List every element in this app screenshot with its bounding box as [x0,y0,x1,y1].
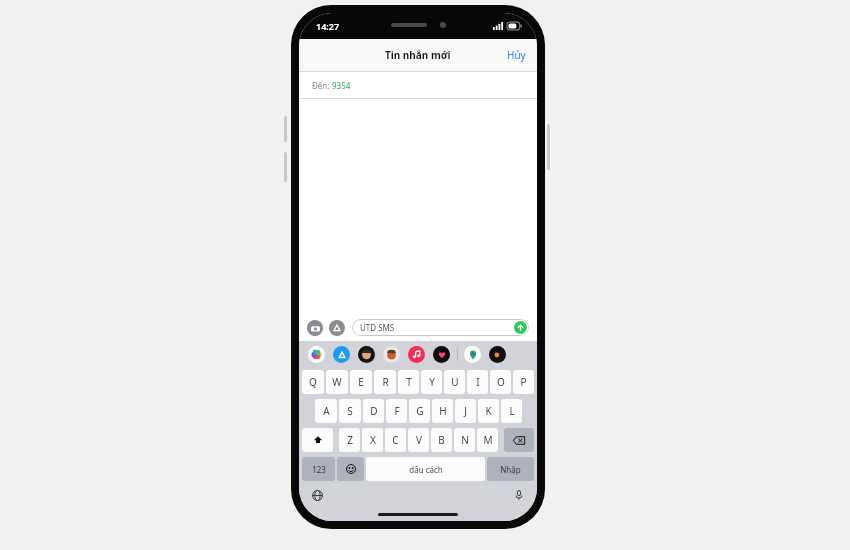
button[interactable]: Hủy [496,41,537,69]
staticText: F [394,404,400,418]
button[interactable]: App [408,346,425,363]
button[interactable]: Q [302,370,324,394]
button[interactable]: App [433,346,450,363]
button[interactable]: A [315,399,337,423]
staticText: 123 [312,464,326,475]
staticText: T [406,375,412,389]
staticText: O [497,375,505,389]
button[interactable]: E [350,370,372,394]
button[interactable]: R [374,370,396,394]
button[interactable]: W [326,370,348,394]
staticText: X [370,433,376,447]
staticText: N [461,433,469,447]
staticText: S [347,404,353,418]
button[interactable]: J [455,399,476,423]
button[interactable]: Đến: [299,72,537,98]
staticText: W [332,375,342,389]
button[interactable]: G [409,399,430,423]
button[interactable]: F [386,399,407,423]
staticText: G [416,404,424,418]
button[interactable]: I [467,370,488,394]
button[interactable]: Backspace [504,428,534,452]
button[interactable]: App [464,346,481,363]
button[interactable]: App [489,346,506,363]
staticText: V [416,433,422,447]
staticText: Q [309,375,317,389]
staticText: R [382,375,389,389]
staticText: Tin nhắn mới [385,48,451,62]
staticText: Hủy [507,48,526,62]
staticText: D [370,404,378,418]
button[interactable]: App [308,346,325,363]
staticText: UTD SMS [360,322,395,333]
staticText: M [483,433,493,447]
button[interactable]: P [513,370,534,394]
staticText: J [464,404,467,418]
button[interactable]: Shift [302,428,333,452]
staticText: 9354 [332,80,351,91]
button[interactable]: App Store [329,320,345,336]
button[interactable]: U [444,370,465,394]
staticText: P [520,375,527,389]
button[interactable]: Y [421,370,442,394]
button[interactable]: 123 [302,457,335,481]
button[interactable]: X [362,428,383,452]
staticText: Z [347,433,353,447]
staticText: C [392,433,399,447]
button[interactable]: B [431,428,452,452]
button[interactable]: N [454,428,475,452]
button[interactable]: S [339,399,361,423]
staticText: Nhập [500,464,521,475]
button[interactable]: L [501,399,522,423]
button[interactable]: D [363,399,384,423]
button[interactable]: H [432,399,453,423]
staticText: K [485,404,492,418]
staticText: A [323,404,330,418]
button[interactable]: C [385,428,406,452]
button[interactable]: Change keyboard [309,487,325,503]
button[interactable]: App [333,346,350,363]
staticText: dấu cách [409,464,443,475]
button[interactable]: K [478,399,499,423]
button[interactable]: Camera [307,320,323,336]
staticText: L [509,404,515,418]
button[interactable]: Dictate [511,487,527,503]
button[interactable]: O [490,370,511,394]
staticText: Đến: [312,80,332,91]
button[interactable]: M [477,428,498,452]
staticText: 14:27 [316,20,340,32]
staticText: I [476,375,480,389]
button[interactable]: App [358,346,375,363]
button[interactable]: V [408,428,429,452]
staticText: B [438,433,445,447]
button[interactable]: Z [339,428,360,452]
button[interactable]: Emoji [337,457,364,481]
staticText: U [451,375,459,389]
button[interactable]: Nhập [487,457,534,481]
button[interactable]: App [383,346,400,363]
button[interactable]: UTD SMS [352,319,529,336]
button[interactable]: Send [514,321,527,334]
staticText: E [358,375,364,389]
button[interactable]: T [398,370,419,394]
button[interactable]: dấu cách [366,457,485,481]
staticText: H [439,404,447,418]
staticText: Y [429,375,435,389]
